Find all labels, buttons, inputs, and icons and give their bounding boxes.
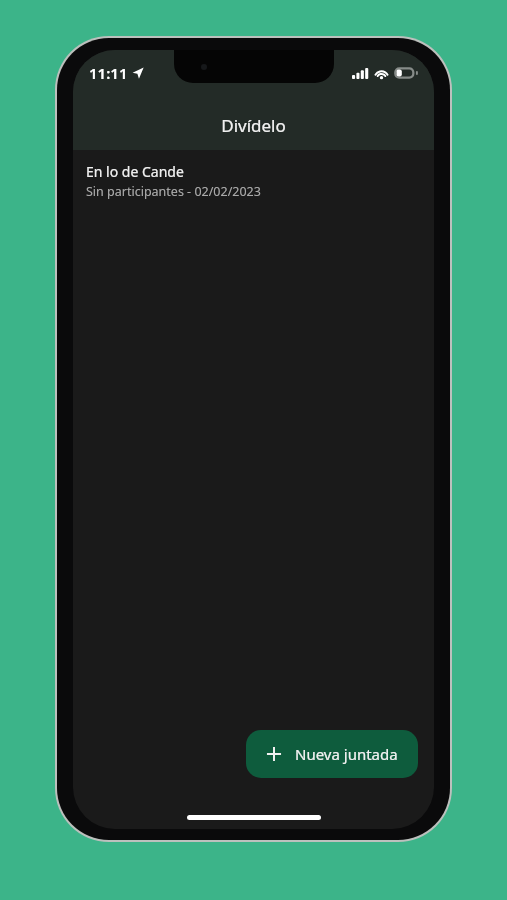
other: Add — [266, 746, 282, 762]
staticText: En lo de Cande — [86, 162, 184, 181]
button[interactable]: En lo de Cande — [73, 150, 434, 212]
button[interactable]: Add — [246, 730, 418, 778]
staticText: Divídelo — [73, 114, 434, 137]
staticText: Nueva juntada — [295, 744, 398, 764]
staticText: Sin participantes - 02/02/2023 — [86, 183, 261, 200]
staticText: 11:11 — [89, 63, 128, 83]
